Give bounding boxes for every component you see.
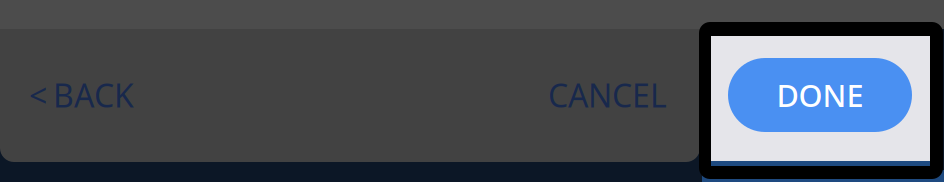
staticText: DONE — [776, 75, 863, 115]
staticText: BACK — [53, 74, 134, 116]
staticText: < — [29, 74, 47, 116]
staticText: CANCEL — [548, 74, 667, 116]
button[interactable]: CANCEL — [548, 29, 667, 161]
button[interactable]: DONE — [728, 58, 912, 132]
button[interactable]: < — [29, 29, 134, 161]
